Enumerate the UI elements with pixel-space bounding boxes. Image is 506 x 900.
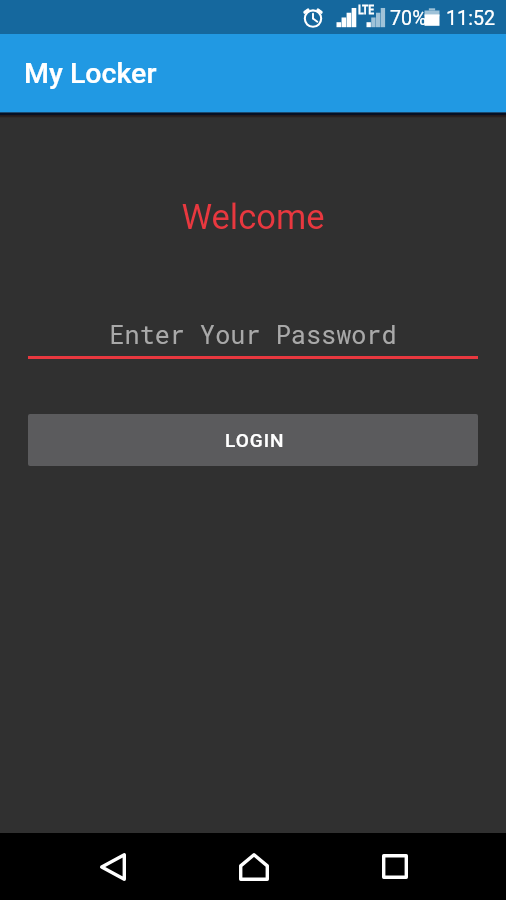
- button[interactable]: LOGIN: [28, 414, 478, 466]
- staticText: Welcome: [0, 197, 506, 237]
- staticText: 70%: [390, 7, 427, 30]
- staticText: LOGIN: [225, 429, 285, 451]
- button[interactable]: Enter Your Password: [28, 318, 478, 359]
- button[interactable]: Home: [213, 833, 295, 900]
- staticText: 11:52: [446, 7, 496, 30]
- staticText: My Locker: [24, 57, 157, 90]
- staticText: LTE: [358, 3, 375, 17]
- button[interactable]: Back: [72, 833, 154, 900]
- staticText: Enter Your Password: [28, 318, 478, 351]
- button[interactable]: Recent apps: [354, 833, 436, 900]
